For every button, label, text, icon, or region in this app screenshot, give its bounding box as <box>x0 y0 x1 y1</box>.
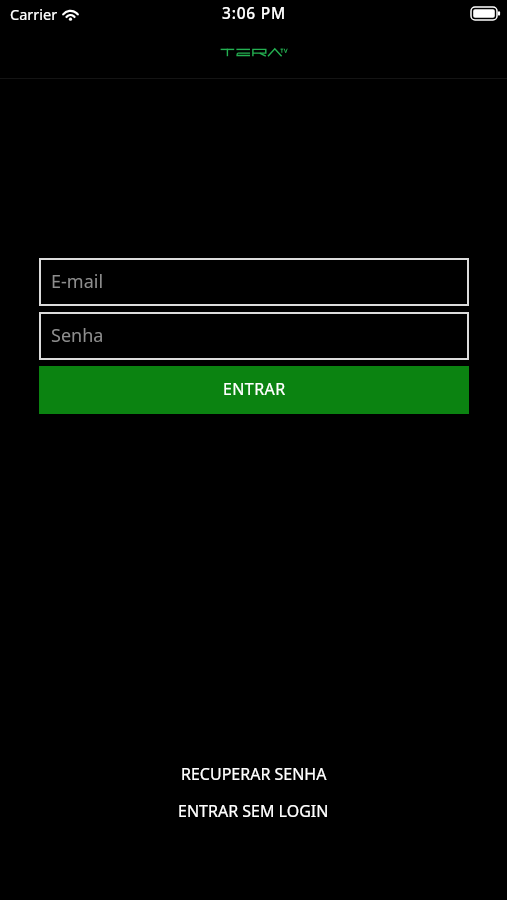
button[interactable]: Senha <box>39 312 469 360</box>
staticText: Senha <box>51 323 104 348</box>
other: Battery full <box>471 7 500 20</box>
staticText: ENTRAR <box>223 378 286 400</box>
button[interactable]: ENTRAR SEM LOGIN <box>160 797 347 825</box>
button[interactable]: RECUPERAR SENHA <box>163 760 345 788</box>
button[interactable]: ENTRAR <box>39 366 469 414</box>
button[interactable]: E-mail <box>39 258 469 306</box>
staticText: RECUPERAR SENHA <box>181 763 327 785</box>
other: Wi-Fi signal <box>61 7 80 21</box>
staticText: E-mail <box>51 269 104 294</box>
other: TERA TV <box>220 45 288 61</box>
staticText: Carrier <box>10 4 58 24</box>
staticText: ENTRAR SEM LOGIN <box>178 800 329 822</box>
staticText: 3:06 PM <box>222 2 287 23</box>
